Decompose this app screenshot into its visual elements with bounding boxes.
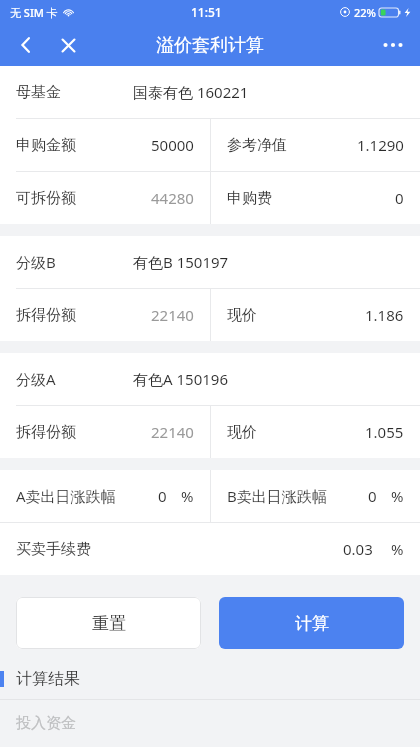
- button[interactable]: 拆得份额: [0, 289, 210, 341]
- button[interactable]: 申购金额: [0, 119, 210, 171]
- button[interactable]: More options: [372, 24, 414, 66]
- staticText: 国泰有色 160221: [133, 82, 249, 102]
- staticText: 拆得份额: [16, 306, 76, 325]
- staticText: 申购费: [227, 189, 272, 208]
- staticText: 现价: [227, 306, 257, 325]
- button[interactable]: 可拆份额: [0, 172, 210, 224]
- button[interactable]: 母基金: [0, 66, 420, 118]
- staticText: %: [181, 486, 194, 506]
- button[interactable]: 现价: [211, 289, 420, 341]
- staticText: 拆得份额: [16, 423, 76, 442]
- staticText: 计算结果: [16, 669, 80, 689]
- staticText: 11:51: [191, 4, 222, 20]
- staticText: 现价: [227, 423, 257, 442]
- button[interactable]: 拆得份额: [0, 406, 210, 458]
- staticText: 22140: [151, 422, 194, 442]
- button[interactable]: 分级A: [0, 353, 420, 405]
- button[interactable]: 买卖手续费: [0, 523, 420, 575]
- button[interactable]: B卖出日涨跌幅: [211, 470, 420, 522]
- staticText: 1.186: [365, 305, 404, 325]
- staticText: 22140: [151, 305, 194, 325]
- staticText: 有色A 150196: [133, 369, 228, 389]
- staticText: 0: [395, 188, 404, 208]
- button[interactable]: 重置: [16, 597, 201, 649]
- staticText: 可拆份额: [16, 189, 76, 208]
- staticText: %: [391, 539, 404, 559]
- staticText: 重置: [92, 613, 126, 634]
- staticText: 溢价套利计算: [156, 34, 264, 57]
- staticText: 母基金: [16, 83, 61, 102]
- button[interactable]: 申购费: [211, 172, 420, 224]
- staticText: 0.03: [343, 539, 373, 559]
- staticText: 1.1290: [357, 135, 404, 155]
- staticText: 50000: [151, 135, 194, 155]
- staticText: 44280: [151, 188, 194, 208]
- staticText: 买卖手续费: [16, 540, 91, 559]
- staticText: 有色B 150197: [133, 252, 229, 272]
- button[interactable]: 分级B: [0, 236, 420, 288]
- staticText: B卖出日涨跌幅: [227, 486, 327, 506]
- staticText: 投入资金: [16, 714, 76, 733]
- button[interactable]: 参考净值: [211, 119, 420, 171]
- staticText: 无 SIM 卡: [10, 5, 58, 20]
- staticText: 分级A: [16, 369, 56, 389]
- staticText: 0: [158, 486, 167, 506]
- button[interactable]: Close: [48, 25, 88, 65]
- button[interactable]: 计算: [219, 597, 404, 649]
- button[interactable]: Back: [6, 25, 46, 65]
- button[interactable]: A卖出日涨跌幅: [0, 470, 210, 522]
- staticText: A卖出日涨跌幅: [16, 486, 116, 506]
- staticText: %: [391, 486, 404, 506]
- staticText: 22%: [354, 5, 376, 20]
- button[interactable]: 现价: [211, 406, 420, 458]
- staticText: 1.055: [365, 422, 404, 442]
- staticText: 0: [368, 486, 377, 506]
- staticText: 分级B: [16, 252, 56, 272]
- staticText: 申购金额: [16, 136, 76, 155]
- staticText: 参考净值: [227, 136, 287, 155]
- staticText: 计算: [295, 613, 329, 634]
